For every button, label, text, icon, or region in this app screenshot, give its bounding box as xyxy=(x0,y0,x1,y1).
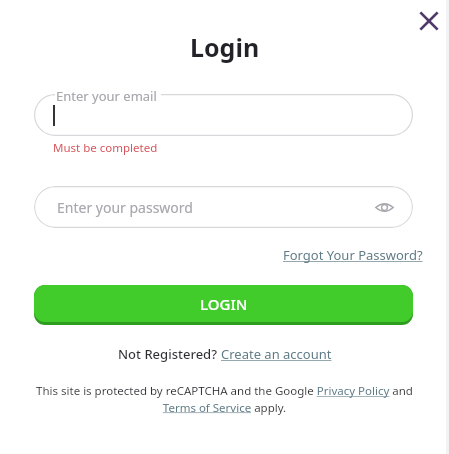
button[interactable]: Create an account xyxy=(221,345,332,363)
staticText: This site is protected by reCAPTCHA and … xyxy=(34,383,415,415)
button[interactable]: LOGIN xyxy=(34,285,413,325)
staticText: LOGIN xyxy=(200,294,248,314)
staticText: Forgot Your Password? xyxy=(283,246,423,264)
button[interactable]: Close xyxy=(409,1,449,41)
button[interactable]: Forgot Your Password? xyxy=(280,244,426,266)
staticText: Create an account xyxy=(221,345,332,363)
staticText: Not Registered? xyxy=(118,345,221,363)
staticText: Enter your email xyxy=(56,87,157,105)
staticText: Login xyxy=(190,30,260,64)
button[interactable]: Show password xyxy=(368,191,400,223)
button[interactable] xyxy=(34,94,413,136)
button[interactable]: Enter your password xyxy=(34,186,413,228)
staticText: Enter your password xyxy=(57,198,193,217)
staticText: Must be completed xyxy=(53,140,158,156)
